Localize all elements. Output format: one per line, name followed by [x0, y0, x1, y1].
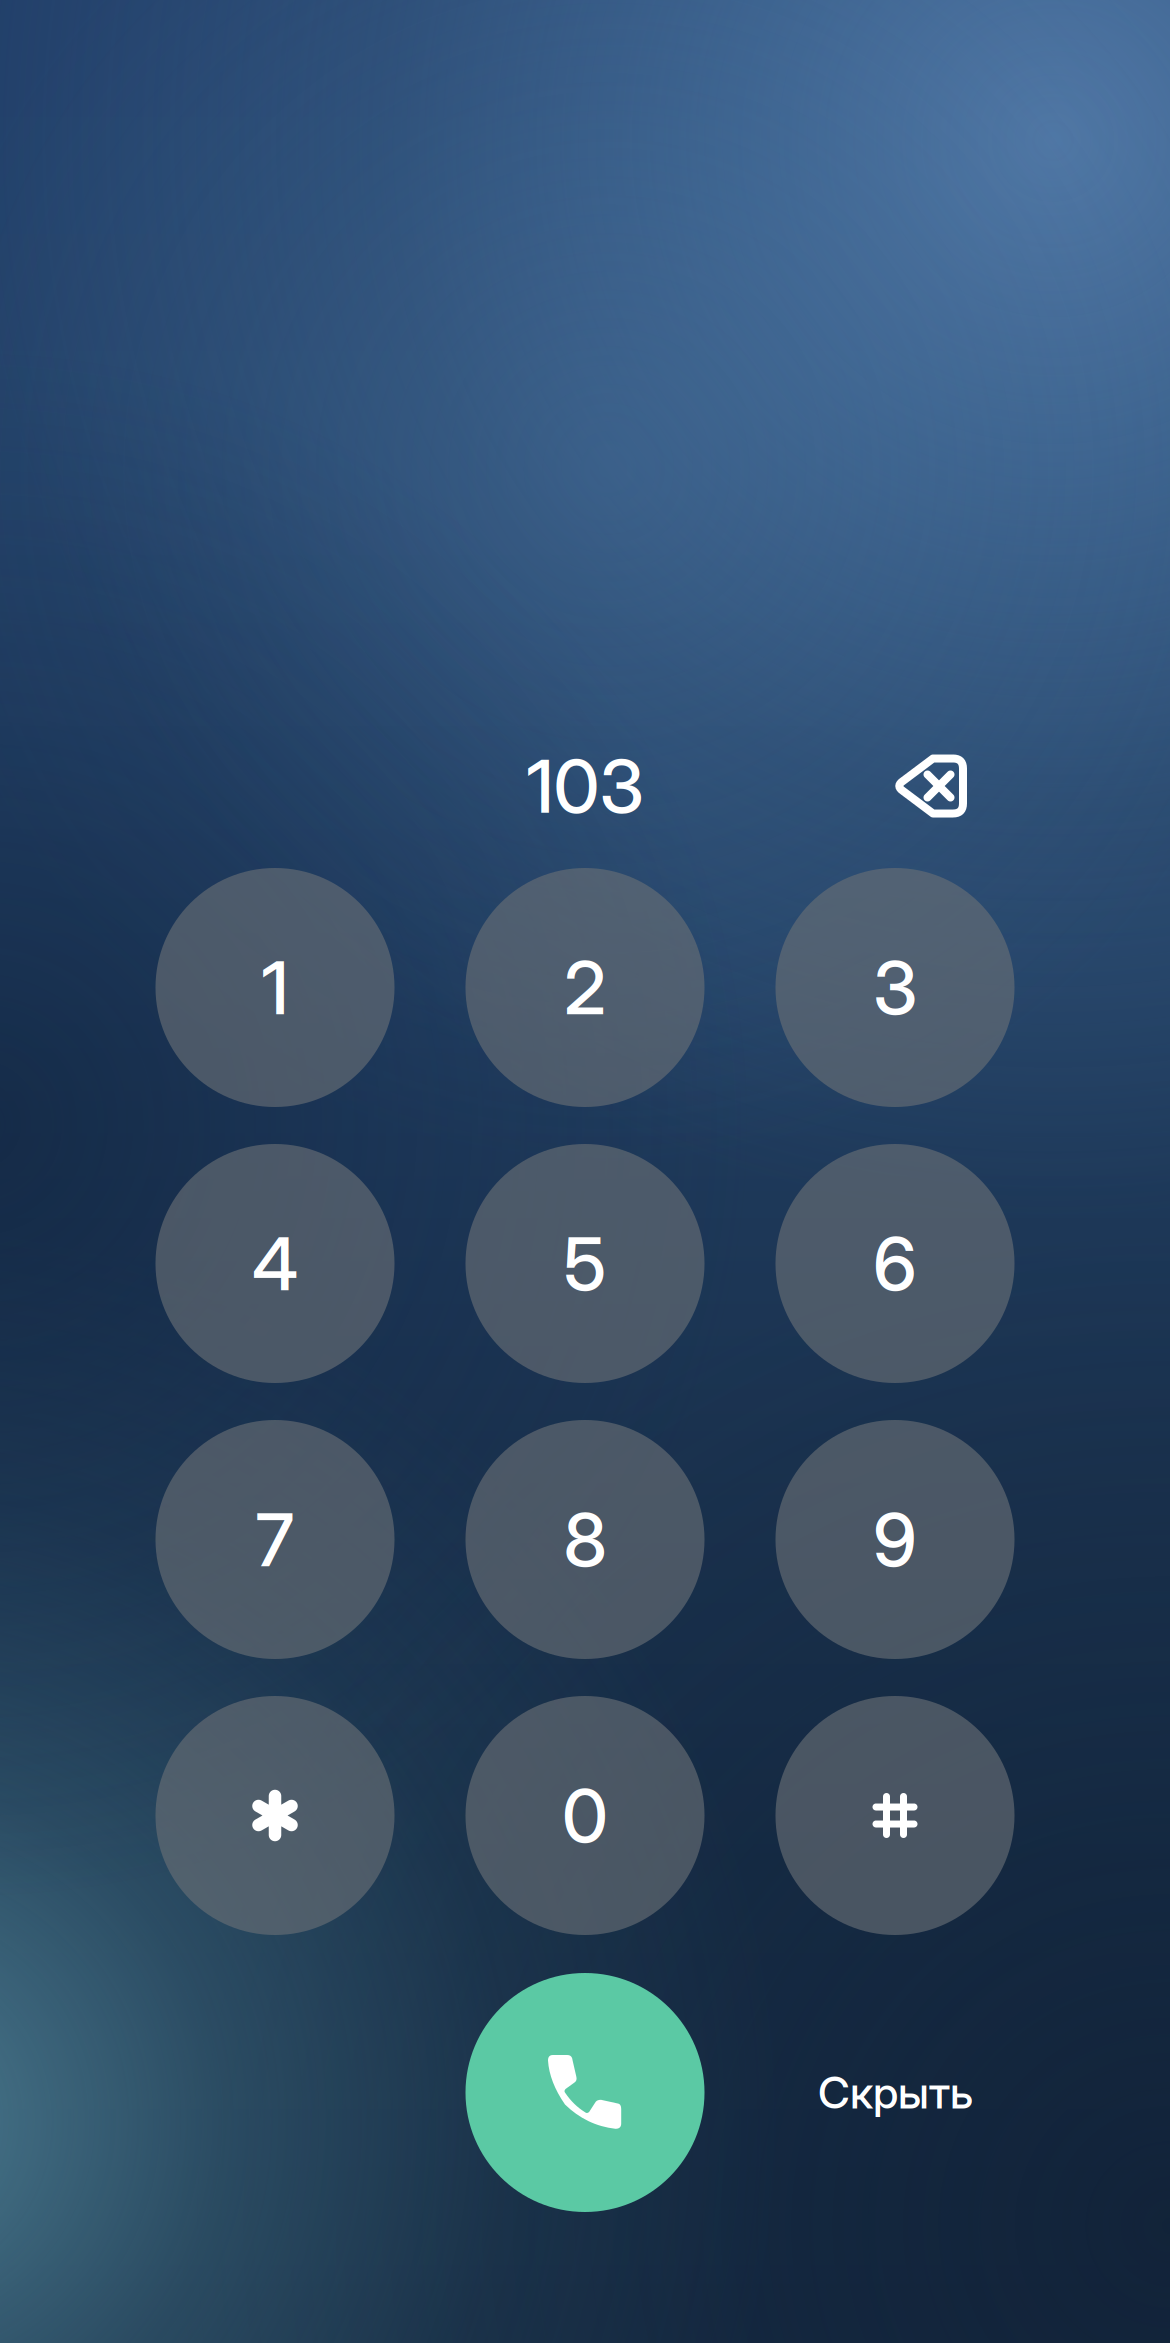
staticText: 9	[873, 1495, 917, 1584]
button[interactable]: 4	[155, 1144, 394, 1383]
button[interactable]: 9	[775, 1420, 1014, 1659]
staticText: 1	[261, 943, 288, 1032]
staticText: 6	[873, 1219, 917, 1308]
button[interactable]: 7	[155, 1420, 394, 1659]
button[interactable]: Delete	[846, 738, 1015, 834]
staticText: 2	[564, 943, 606, 1032]
staticText: 3	[873, 943, 917, 1032]
staticText: 8	[563, 1495, 606, 1584]
button[interactable]: Call	[465, 1973, 704, 2212]
button[interactable]: Скрыть	[776, 2044, 1015, 2140]
staticText: 5	[563, 1219, 606, 1308]
button[interactable]: 6	[775, 1144, 1014, 1383]
staticText: 0	[562, 1771, 608, 1860]
staticText: Скрыть	[818, 2066, 973, 2119]
staticText: 103	[526, 742, 643, 830]
button[interactable]: 8	[465, 1420, 704, 1659]
button[interactable]: Star	[155, 1696, 394, 1935]
staticText: 4	[252, 1219, 298, 1308]
button[interactable]: 2	[465, 868, 704, 1107]
button[interactable]: 3	[775, 868, 1014, 1107]
button[interactable]: 5	[465, 1144, 704, 1383]
button[interactable]: 0	[465, 1696, 704, 1935]
button[interactable]: 1	[155, 868, 394, 1107]
button[interactable]: Pound	[775, 1696, 1014, 1935]
staticText: 7	[255, 1495, 294, 1584]
